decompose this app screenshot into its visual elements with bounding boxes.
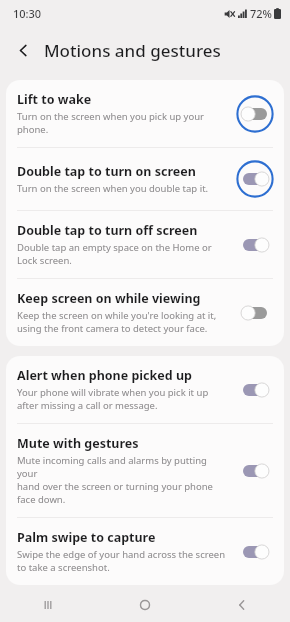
- staticText: Turn on the screen when you pick up your…: [17, 110, 204, 136]
- button[interactable]: Double tap to turn off screen: [6, 211, 284, 278]
- button[interactable]: Mute with gestures: [6, 424, 284, 517]
- staticText: Lift to wake: [17, 91, 92, 108]
- button[interactable]: Keep screen on while viewing: [6, 279, 284, 346]
- staticText: Turn on the screen when you double tap i…: [17, 182, 209, 195]
- button[interactable]: Palm swipe to capture: [6, 518, 284, 585]
- staticText: Mute incoming calls and alarms by puttin…: [17, 454, 229, 506]
- staticText: Mute with gestures: [17, 435, 139, 452]
- staticText: Alert when phone picked up: [17, 367, 192, 384]
- staticText: Motions and gestures: [44, 39, 221, 62]
- staticText: Double tap an empty space on the Home or…: [17, 241, 212, 267]
- staticText: 10:30: [13, 6, 42, 21]
- staticText: Double tap to turn off screen: [17, 222, 198, 239]
- button[interactable]: Off: [235, 293, 275, 333]
- staticText: Keep screen on while viewing: [17, 290, 201, 307]
- staticText: Keep the screen on while you're looking …: [17, 309, 217, 335]
- button[interactable]: Double tap to turn on screen: [6, 148, 284, 210]
- button[interactable]: Back: [193, 588, 290, 622]
- staticText: Double tap to turn on screen: [17, 163, 196, 180]
- button[interactable]: On: [235, 370, 275, 410]
- staticText: Swipe the edge of your hand across the s…: [17, 548, 226, 574]
- button[interactable]: Off: [235, 94, 275, 134]
- button[interactable]: Lift to wake: [6, 80, 284, 147]
- button[interactable]: On: [235, 532, 275, 572]
- button[interactable]: Alert when phone picked up: [6, 356, 284, 423]
- button[interactable]: Recent apps: [0, 588, 96, 622]
- staticText: Palm swipe to capture: [17, 529, 156, 546]
- staticText: Your phone will vibrate when you pick it…: [17, 386, 209, 412]
- button[interactable]: On: [235, 451, 275, 491]
- button[interactable]: Back: [6, 33, 40, 67]
- button[interactable]: On: [235, 159, 275, 199]
- button[interactable]: Home: [96, 588, 193, 622]
- button[interactable]: On: [235, 225, 275, 265]
- staticText: 72%: [250, 6, 272, 21]
